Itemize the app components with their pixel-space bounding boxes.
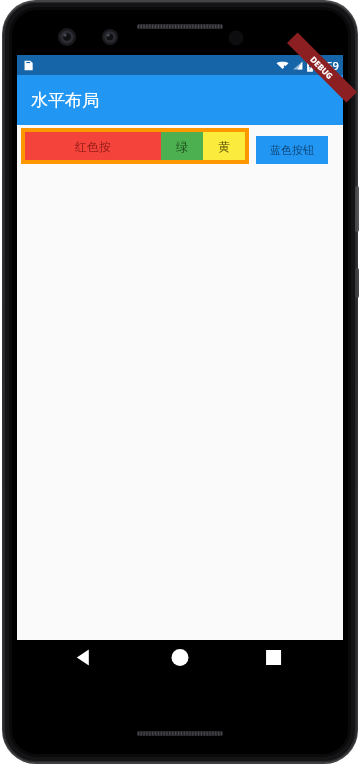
button[interactable]: Back: [54, 640, 114, 675]
button[interactable]: 黄: [203, 132, 245, 160]
staticText: 绿: [176, 139, 188, 154]
button[interactable]: 蓝色按钮: [256, 136, 328, 164]
staticText: 蓝色按钮: [270, 143, 314, 157]
button[interactable]: 绿: [161, 132, 203, 160]
staticText: 黄: [218, 139, 230, 154]
button[interactable]: Recents: [244, 640, 304, 675]
button[interactable]: Home: [150, 640, 210, 675]
button[interactable]: 红色按: [25, 132, 161, 160]
staticText: DEBUG: [308, 54, 336, 81]
staticText: 9:59: [317, 58, 339, 73]
staticText: 红色按: [75, 139, 111, 154]
staticText: 水平布局: [31, 90, 99, 111]
